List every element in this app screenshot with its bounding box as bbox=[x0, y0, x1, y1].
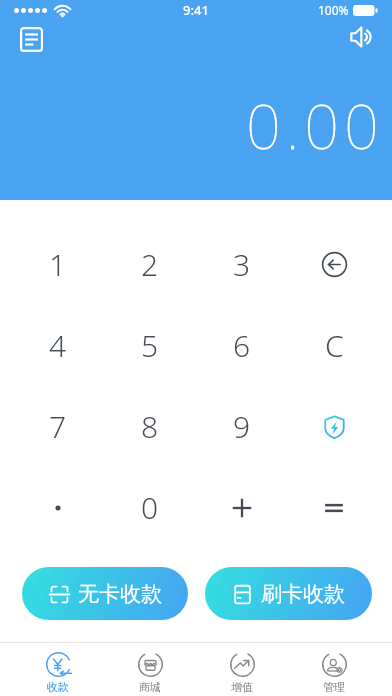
staticText: 100% bbox=[318, 2, 349, 18]
button[interactable]: 商城 bbox=[104, 642, 196, 696]
button[interactable]: 1 bbox=[12, 223, 104, 305]
button[interactable]: Backspace bbox=[288, 223, 380, 305]
staticText: 无卡收款 bbox=[78, 581, 162, 607]
button[interactable]: 收款 bbox=[12, 642, 104, 696]
staticText: 0 bbox=[141, 487, 159, 528]
staticText: 刷卡收款 bbox=[261, 581, 345, 607]
button[interactable]: Decimal point bbox=[12, 467, 104, 548]
staticText: 4 bbox=[49, 325, 67, 366]
button[interactable]: 4 bbox=[12, 305, 104, 386]
staticText: 7 bbox=[49, 406, 67, 447]
button[interactable]: 5 bbox=[104, 305, 196, 386]
button[interactable]: Equals bbox=[288, 467, 380, 548]
staticText: 9 bbox=[233, 406, 251, 447]
staticText: 收款 bbox=[47, 680, 69, 694]
button[interactable]: 无卡收款 bbox=[22, 567, 188, 620]
button[interactable]: 7 bbox=[12, 386, 104, 467]
other: Decimal point bbox=[47, 497, 69, 519]
button[interactable]: Plus bbox=[196, 467, 288, 548]
staticText: 1 bbox=[49, 244, 67, 285]
button[interactable]: Secure keypad bbox=[288, 386, 380, 467]
button[interactable]: 增值 bbox=[196, 642, 288, 696]
staticText: 6 bbox=[233, 325, 251, 366]
staticText: 5 bbox=[141, 325, 159, 366]
button[interactable]: 6 bbox=[196, 305, 288, 386]
staticText: 0.00 bbox=[246, 84, 384, 167]
staticText: 增值 bbox=[231, 680, 253, 694]
staticText: C bbox=[325, 325, 344, 366]
staticText: 管理 bbox=[323, 680, 345, 694]
staticText: 8 bbox=[141, 406, 159, 447]
staticText: 2 bbox=[141, 244, 159, 285]
other: Secure keypad bbox=[324, 415, 345, 439]
other: Plus bbox=[231, 497, 253, 519]
button[interactable]: 刷卡收款 bbox=[205, 567, 372, 620]
button[interactable]: Sound bbox=[346, 20, 380, 54]
button[interactable]: 9 bbox=[196, 386, 288, 467]
button[interactable]: 管理 bbox=[288, 642, 380, 696]
button[interactable]: 8 bbox=[104, 386, 196, 467]
button[interactable]: 0 bbox=[104, 467, 196, 548]
staticText: 商城 bbox=[139, 680, 161, 694]
other: Equals bbox=[323, 497, 345, 519]
other: Backspace bbox=[321, 251, 348, 278]
button[interactable]: C bbox=[288, 305, 380, 386]
staticText: 3 bbox=[233, 244, 251, 285]
button[interactable]: 2 bbox=[104, 223, 196, 305]
button[interactable]: 3 bbox=[196, 223, 288, 305]
staticText: 9:41 bbox=[183, 1, 209, 19]
button[interactable]: Orders bbox=[14, 22, 48, 56]
